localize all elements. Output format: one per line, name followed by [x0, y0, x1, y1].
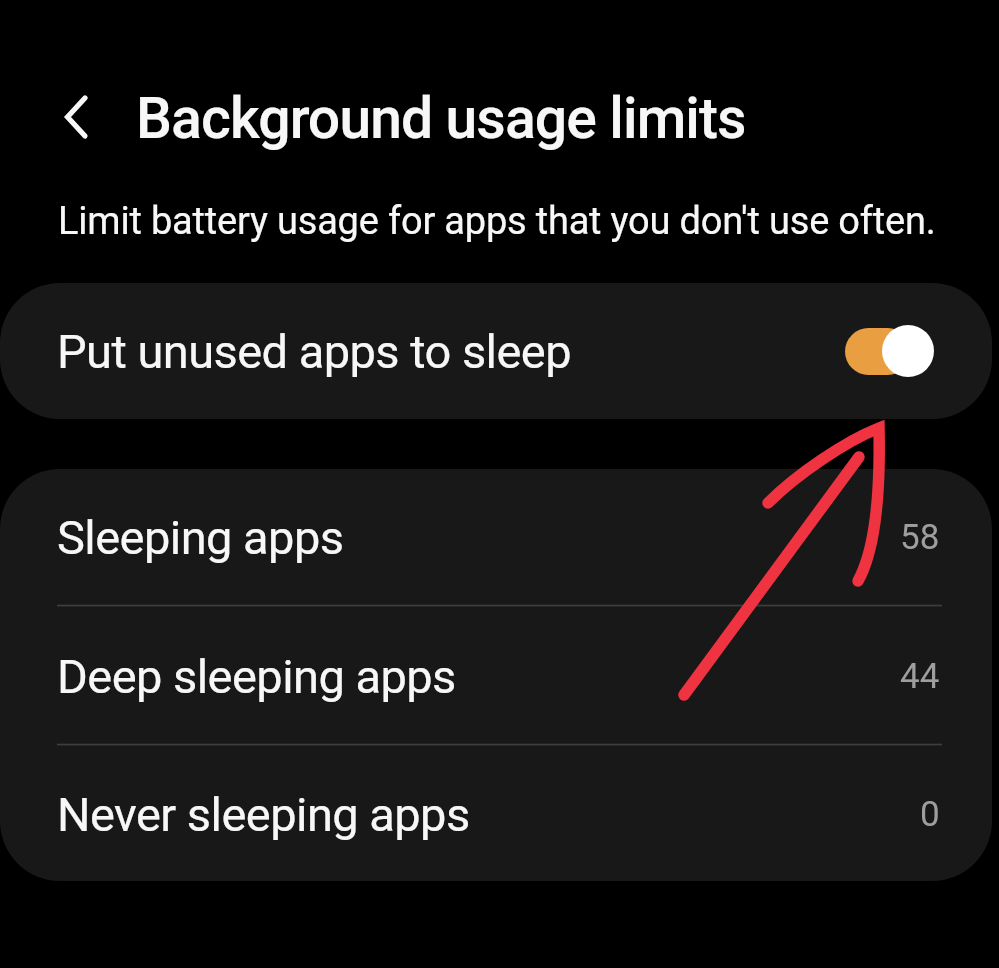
staticText: 58	[900, 517, 940, 558]
button[interactable]: Sleeping apps	[0, 469, 992, 606]
button[interactable]: Put unused apps to sleep	[0, 283, 992, 419]
staticText: Put unused apps to sleep	[57, 324, 572, 379]
button[interactable]: Deep sleeping apps	[0, 608, 992, 745]
staticText: 0	[920, 794, 940, 835]
button[interactable]: Never sleeping apps	[0, 747, 992, 881]
staticText: Background usage limits	[136, 85, 746, 152]
staticText: Sleeping apps	[57, 510, 344, 565]
staticText: Never sleeping apps	[57, 787, 470, 842]
button[interactable]: Back	[43, 83, 109, 151]
staticText: Limit battery usage for apps that you do…	[58, 199, 936, 244]
staticText: Deep sleeping apps	[57, 649, 456, 704]
staticText: 44	[900, 656, 940, 697]
